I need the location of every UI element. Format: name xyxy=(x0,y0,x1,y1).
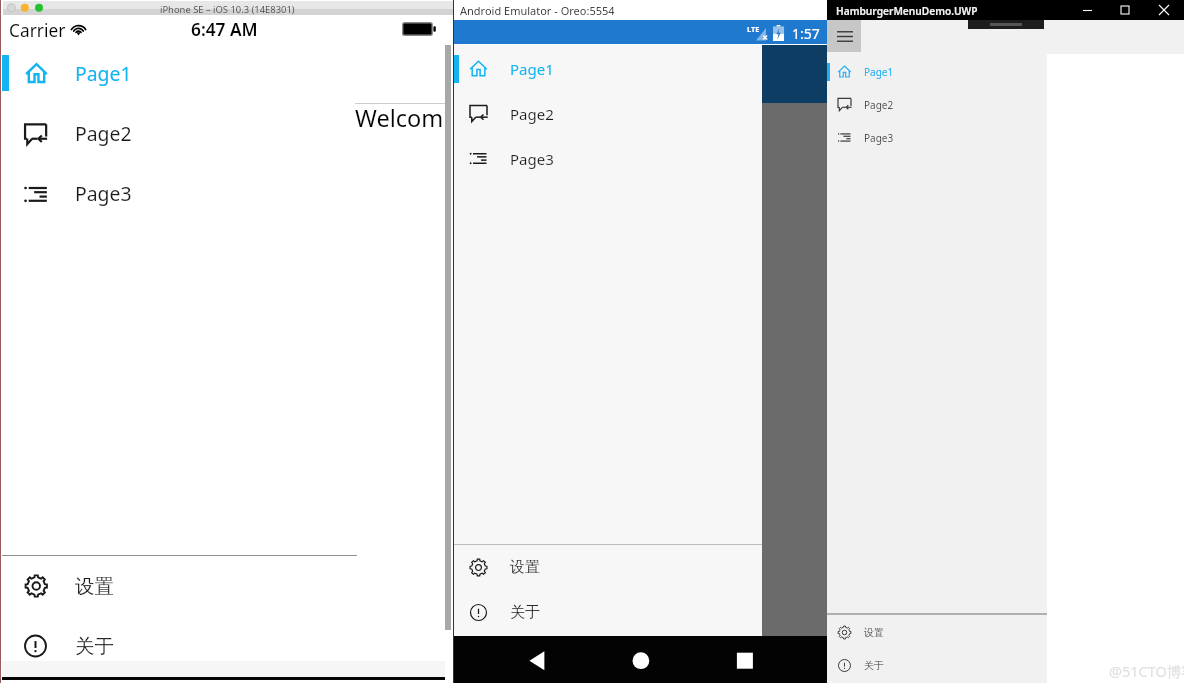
staticText: 设置 xyxy=(864,626,884,639)
staticText: Page3 xyxy=(864,131,894,145)
staticText: Page3 xyxy=(75,180,132,206)
button[interactable]: Page1 xyxy=(2,43,445,103)
staticText: Page1 xyxy=(864,65,894,79)
staticText: Carrier xyxy=(9,19,66,43)
button[interactable]: Page3 xyxy=(827,121,1184,154)
button[interactable]: 关于 xyxy=(827,649,1184,682)
staticText: HamburgerMenuDemo.UWP xyxy=(836,4,978,18)
staticText: Page2 xyxy=(864,98,894,112)
button[interactable]: Page3 xyxy=(2,163,445,223)
staticText: Welcome xyxy=(355,103,445,134)
button[interactable]: 关于 xyxy=(2,616,445,676)
button[interactable]: Page2 xyxy=(827,88,1184,121)
staticText: Page3 xyxy=(510,149,554,169)
staticText: 1:57 xyxy=(792,24,820,43)
button[interactable]: Page1 xyxy=(454,46,762,91)
button[interactable]: Page2 xyxy=(454,91,762,136)
staticText: LTE xyxy=(747,24,760,34)
button[interactable]: 设置 xyxy=(454,545,762,590)
button[interactable]: Close xyxy=(1144,0,1184,20)
staticText: 设置 xyxy=(75,574,114,598)
staticText: 设置 xyxy=(510,558,540,577)
staticText: iPhone SE – iOS 10.3 (14E8301) xyxy=(160,3,295,16)
staticText: 关于 xyxy=(864,659,884,672)
staticText: Page2 xyxy=(75,120,132,146)
button[interactable]: 设置 xyxy=(827,616,1184,649)
button[interactable]: 设置 xyxy=(2,556,445,616)
button[interactable]: Page2 xyxy=(2,103,445,163)
button[interactable]: 关于 xyxy=(454,590,762,635)
button[interactable]: Menu xyxy=(827,20,861,52)
staticText: Page1 xyxy=(510,59,554,79)
button[interactable]: Maximize xyxy=(1106,0,1144,20)
button[interactable]: Page1 xyxy=(827,55,1184,88)
staticText: Page1 xyxy=(75,60,132,86)
staticText: 关于 xyxy=(75,634,114,658)
button[interactable]: Minimize xyxy=(1068,0,1106,20)
staticText: @51CTO博客 xyxy=(1109,661,1184,681)
button[interactable]: Page3 xyxy=(454,136,762,181)
staticText: Page2 xyxy=(510,104,554,124)
staticText: Android Emulator - Oreo:5554 xyxy=(460,3,615,18)
staticText: 6:47 AM xyxy=(191,18,258,42)
staticText: 关于 xyxy=(510,603,540,622)
